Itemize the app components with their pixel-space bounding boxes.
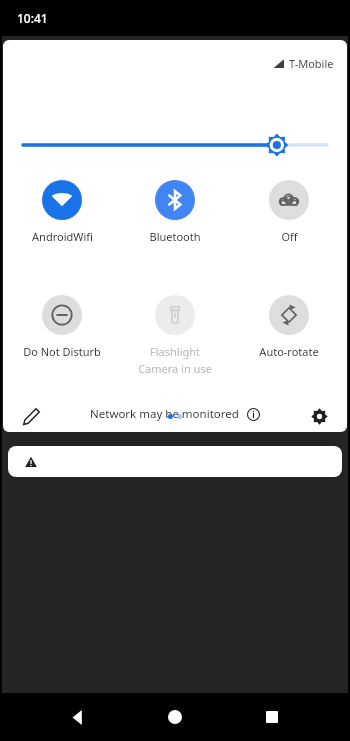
button[interactable]: Do Not Disturb bbox=[7, 295, 117, 359]
staticText: Do Not Disturb bbox=[23, 344, 101, 359]
staticText: Network may be monitored bbox=[90, 406, 239, 422]
button[interactable]: T-Mobile bbox=[273, 56, 334, 71]
button[interactable]: Network may be monitored bbox=[3, 406, 347, 422]
button[interactable]: AndroidWifi bbox=[7, 180, 117, 244]
button[interactable]: Auto-rotate bbox=[234, 295, 344, 359]
button[interactable]: Home bbox=[155, 697, 195, 737]
button[interactable]: Off bbox=[234, 180, 344, 244]
button[interactable]: Brightness bbox=[23, 132, 327, 158]
staticText: 10:41 bbox=[17, 10, 48, 26]
staticText: T-Mobile bbox=[289, 56, 334, 71]
staticText: Bluetooth bbox=[149, 229, 201, 244]
button[interactable]: Settings bbox=[305, 402, 333, 430]
staticText: Flashlight bbox=[150, 344, 200, 359]
staticText: Auto-rotate bbox=[259, 344, 319, 359]
staticText: Camera in use bbox=[138, 361, 212, 376]
button[interactable]: Edit tiles bbox=[17, 402, 45, 430]
button[interactable]: Flashlight bbox=[120, 295, 230, 376]
button[interactable]: Bluetooth bbox=[120, 180, 230, 244]
staticText: Off bbox=[281, 229, 298, 244]
button[interactable]: Recent apps bbox=[252, 697, 292, 737]
button[interactable]: Back bbox=[58, 697, 98, 737]
button[interactable] bbox=[8, 446, 342, 477]
staticText: AndroidWifi bbox=[32, 229, 93, 244]
